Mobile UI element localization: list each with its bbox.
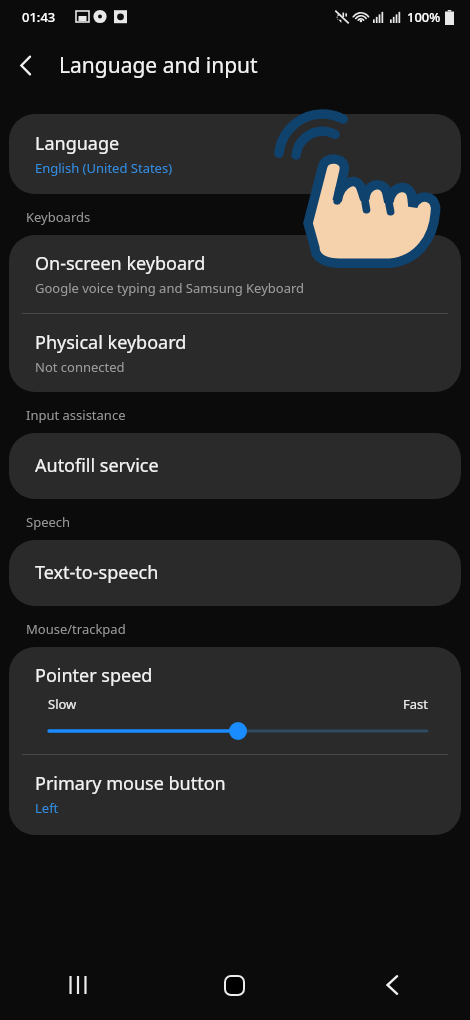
button[interactable]: Physical keyboard	[9, 314, 461, 392]
staticText: Physical keyboard	[35, 330, 187, 355]
button[interactable]: Primary mouse button	[9, 755, 461, 835]
staticText: 01:43	[22, 8, 56, 26]
staticText: On-screen keyboard	[35, 251, 206, 276]
staticText: Autofill service	[35, 453, 159, 478]
button[interactable]: Text-to-speech	[9, 540, 461, 606]
staticText: Left	[35, 799, 59, 817]
button[interactable]: On-screen keyboard	[9, 235, 461, 313]
button[interactable]: Pointer speed slider	[35, 720, 441, 742]
other: Tap indicator	[271, 128, 443, 264]
staticText: Fast	[403, 695, 428, 713]
staticText: 100%	[407, 8, 441, 26]
staticText: Not connected	[35, 358, 125, 376]
staticText: Slow	[48, 695, 77, 713]
staticText: Pointer speed	[35, 663, 153, 688]
staticText: Speech	[26, 513, 71, 531]
staticText: Text-to-speech	[35, 560, 159, 585]
staticText: Keyboards	[26, 208, 91, 226]
staticText: English (United States)	[35, 159, 173, 177]
button[interactable]: Autofill service	[9, 433, 461, 499]
button[interactable]: Back	[313, 950, 470, 1020]
staticText: Google voice typing and Samsung Keyboard	[35, 279, 305, 297]
button[interactable]: Language	[9, 114, 461, 194]
button[interactable]: Recent apps	[0, 950, 156, 1020]
staticText: Primary mouse button	[35, 771, 226, 796]
staticText: Language	[35, 131, 120, 156]
button[interactable]: Pointer speed	[9, 647, 461, 754]
staticText: Input assistance	[26, 406, 126, 424]
staticText: Language and input	[59, 51, 258, 80]
button[interactable]: Navigate up	[0, 40, 50, 90]
staticText: Mouse/trackpad	[26, 620, 126, 638]
button[interactable]: Home	[156, 950, 313, 1020]
